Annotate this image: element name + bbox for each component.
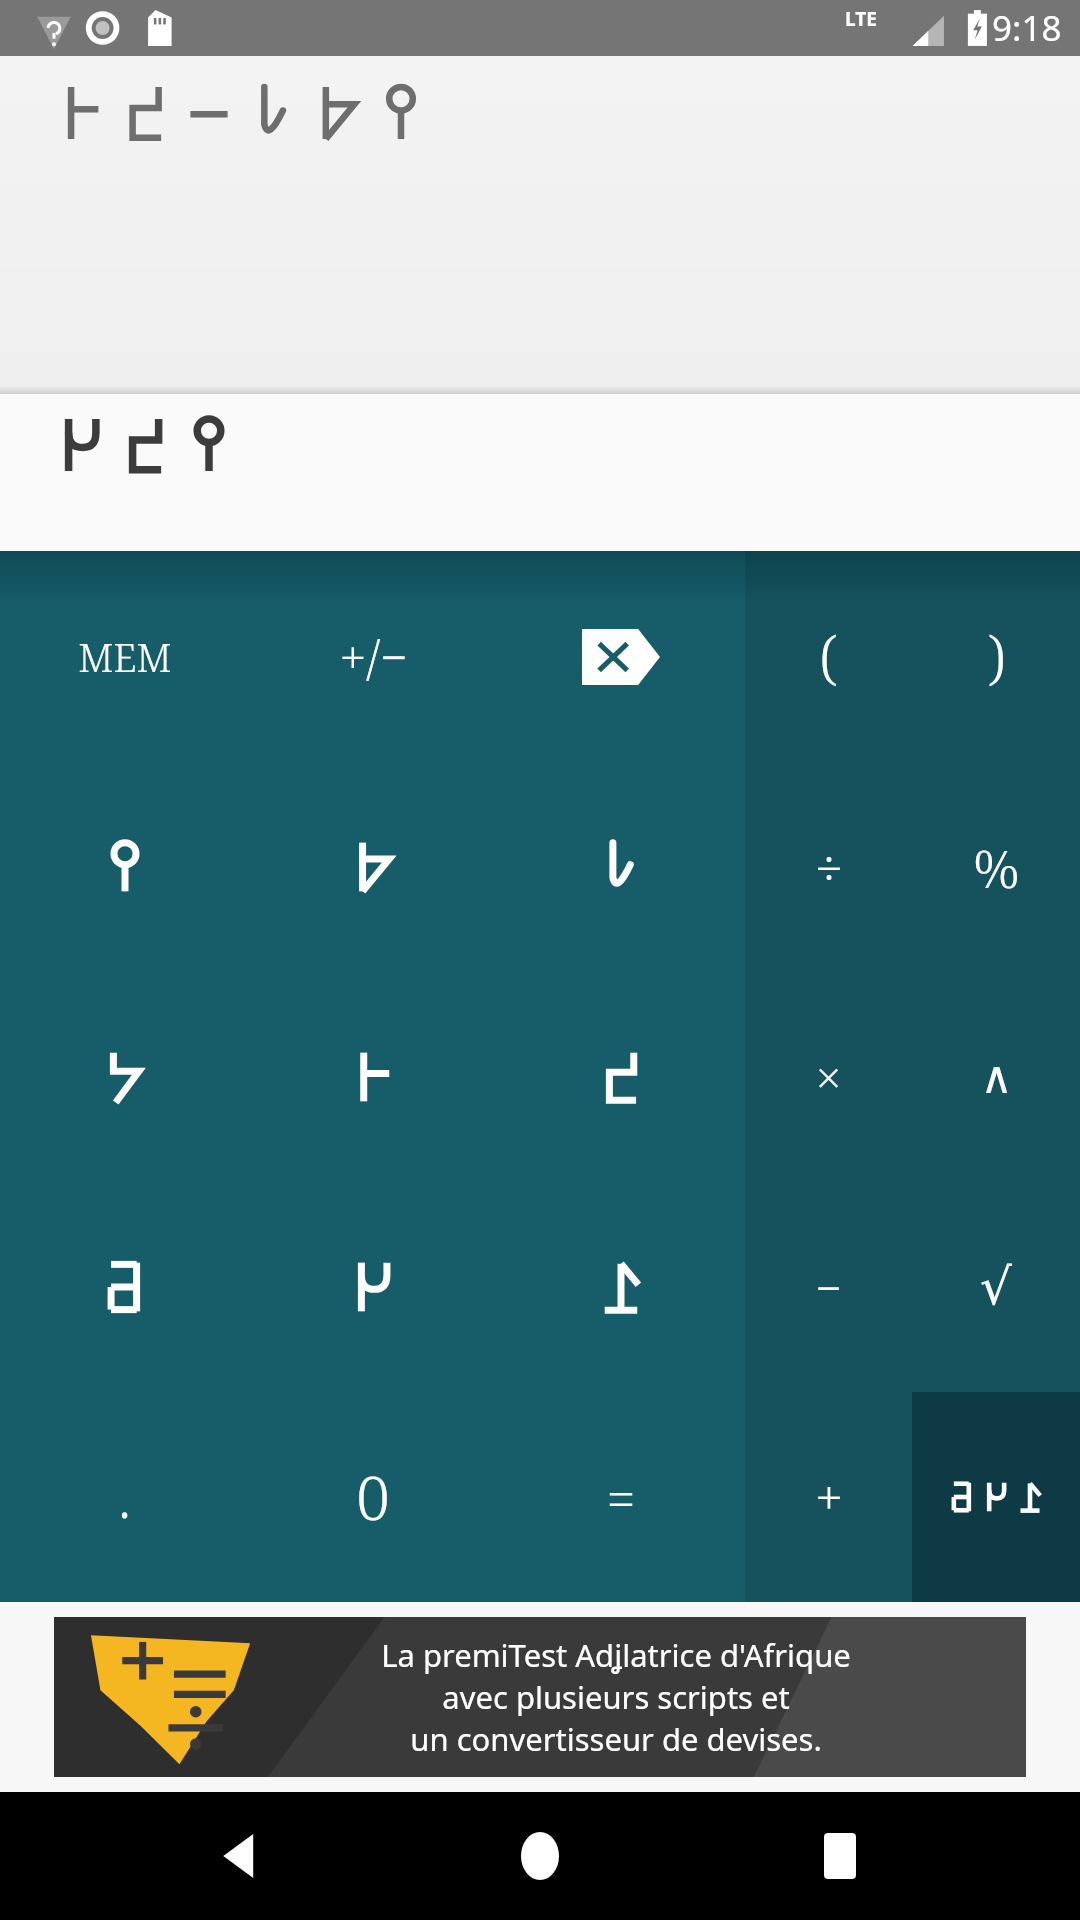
button[interactable]: One <box>0 762 249 972</box>
staticText: − <box>815 1256 842 1319</box>
button[interactable]: Nine <box>497 1182 745 1392</box>
staticText: avec plusieurs scripts et <box>442 1676 790 1718</box>
button[interactable] <box>0 394 1080 551</box>
button[interactable]: ) <box>912 551 1080 762</box>
staticText: +/− <box>339 624 408 689</box>
button[interactable]: Back <box>180 1796 300 1916</box>
button[interactable]: Four <box>0 972 249 1182</box>
button[interactable]: La premiTest Adʝlatrice d'Afrique <box>54 1617 1026 1777</box>
button[interactable]: Backspace <box>497 551 745 762</box>
button[interactable]: ∧ <box>912 972 1080 1182</box>
button[interactable]: Convert <box>912 1392 1080 1602</box>
button[interactable]: Home <box>480 1796 600 1916</box>
button[interactable]: % <box>912 762 1080 972</box>
staticText: ∧ <box>980 1052 1013 1103</box>
button[interactable]: 0 <box>249 1392 497 1602</box>
staticText: MEM <box>78 631 172 683</box>
button[interactable]: Eight <box>249 1182 497 1392</box>
button[interactable]: MEM <box>0 551 249 762</box>
staticText: 0 <box>356 1456 390 1538</box>
staticText: + <box>815 1463 843 1531</box>
staticText: ( <box>819 617 838 696</box>
staticText: ÷ <box>815 833 843 901</box>
button[interactable]: = <box>497 1392 745 1602</box>
staticText: . <box>118 1460 131 1534</box>
staticText: √ <box>980 1258 1012 1316</box>
staticText: % <box>973 832 1020 903</box>
staticText: ) <box>987 617 1006 696</box>
staticText: × <box>816 1047 841 1107</box>
staticText: un convertisseur de devises. <box>410 1718 822 1760</box>
staticText: 9:18 <box>992 4 1062 52</box>
staticText: LTE <box>845 6 877 32</box>
button[interactable]: Five <box>249 972 497 1182</box>
button[interactable]: √ <box>912 1182 1080 1392</box>
button[interactable]: +/− <box>249 551 497 762</box>
button[interactable]: Two <box>249 762 497 972</box>
button[interactable]: Seven <box>0 1182 249 1392</box>
button[interactable]: − <box>745 1182 912 1392</box>
button[interactable]: + <box>745 1392 912 1602</box>
staticText: La premiTest Adʝlatrice d'Afrique <box>381 1634 851 1676</box>
button[interactable]: ( <box>745 551 912 762</box>
button[interactable] <box>0 56 1080 394</box>
button[interactable]: . <box>0 1392 249 1602</box>
button[interactable]: Three <box>497 762 745 972</box>
button[interactable]: ÷ <box>745 762 912 972</box>
button[interactable]: × <box>745 972 912 1182</box>
button[interactable]: Recents <box>780 1796 900 1916</box>
staticText: = <box>606 1462 636 1533</box>
button[interactable]: Six <box>497 972 745 1182</box>
